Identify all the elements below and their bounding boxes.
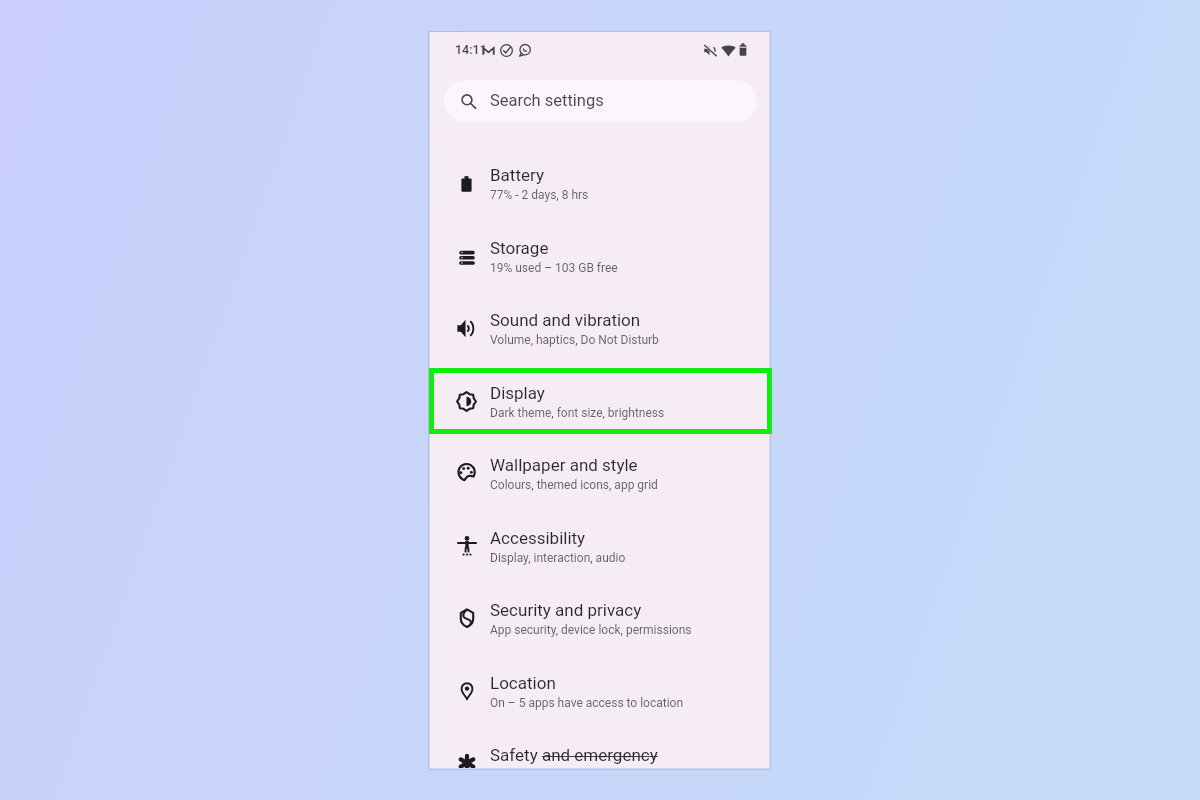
staticText: Storage xyxy=(490,238,549,258)
other: Ringer muted xyxy=(704,44,717,57)
other: Battery level xyxy=(739,43,747,56)
staticText: Display xyxy=(490,383,545,403)
other: Wi-Fi connected xyxy=(721,44,736,57)
button[interactable]: Safety and emergency xyxy=(430,727,769,768)
other: Tasks notification xyxy=(500,44,513,57)
staticText: Sound and vibration xyxy=(490,310,641,330)
staticText: Colours, themed icons, app grid xyxy=(490,478,658,492)
button[interactable]: Accessibility xyxy=(430,510,769,583)
button[interactable]: Battery xyxy=(430,147,769,220)
staticText: Dark theme, font size, brightness xyxy=(490,406,665,420)
button[interactable]: Display xyxy=(430,365,769,438)
staticText: Volume, haptics, Do Not Disturb xyxy=(490,333,659,347)
staticText: Security and privacy xyxy=(490,600,642,620)
staticText: On – 5 apps have access to location xyxy=(490,696,684,710)
staticText: Search settings xyxy=(490,91,604,110)
button[interactable]: Storage xyxy=(430,220,769,293)
staticText: Location xyxy=(490,673,556,693)
staticText: 19% used – 103 GB free xyxy=(490,261,618,275)
button[interactable]: Location xyxy=(430,655,769,728)
button[interactable]: Sound and vibration xyxy=(430,292,769,365)
staticText: Wallpaper and style xyxy=(490,455,638,475)
other: Gmail notification xyxy=(482,44,495,57)
other: WhatsApp notification xyxy=(518,44,531,57)
button[interactable]: Security and privacy xyxy=(430,582,769,655)
staticText: Accessibility xyxy=(490,528,586,548)
button[interactable]: Search settings xyxy=(444,80,757,122)
staticText: 77% - 2 days, 8 hrs xyxy=(490,188,589,202)
staticText: 14:11 xyxy=(455,42,487,57)
staticText: App security, device lock, permissions xyxy=(490,623,692,637)
button[interactable]: Wallpaper and style xyxy=(430,437,769,510)
staticText: Battery xyxy=(490,165,544,185)
staticText: Display, interaction, audio xyxy=(490,551,626,565)
staticText: Safety and emergency xyxy=(490,745,658,765)
